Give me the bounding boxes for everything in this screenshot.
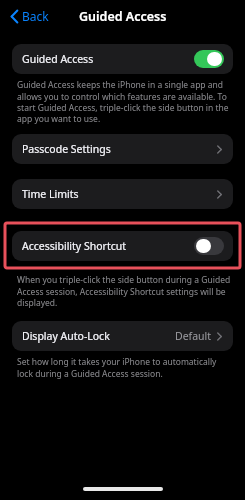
staticText: Guided Access (79, 8, 167, 25)
button[interactable]: Off (194, 237, 224, 255)
button[interactable]: Back (6, 4, 53, 28)
button[interactable]: Display Auto-Lock (12, 321, 233, 351)
staticText: Default (175, 329, 212, 343)
staticText: Set how long it takes your iPhone to aut… (17, 356, 232, 380)
staticText: Guided Access keeps the iPhone in a sing… (17, 79, 232, 125)
button[interactable]: Guided Access (12, 44, 233, 74)
staticText: Back (22, 8, 49, 24)
button[interactable]: Passcode Settings (12, 134, 233, 164)
button[interactable]: On (194, 50, 224, 68)
button[interactable]: Time Limits (12, 179, 233, 209)
staticText: Passcode Settings (22, 142, 217, 156)
staticText: Accessibility Shortcut (22, 239, 194, 253)
button[interactable]: Accessibility Shortcut (12, 231, 233, 261)
staticText: When you triple-click the side button du… (17, 274, 232, 309)
staticText: Time Limits (22, 187, 217, 201)
staticText: Guided Access (22, 52, 194, 66)
staticText: Display Auto-Lock (22, 329, 175, 343)
